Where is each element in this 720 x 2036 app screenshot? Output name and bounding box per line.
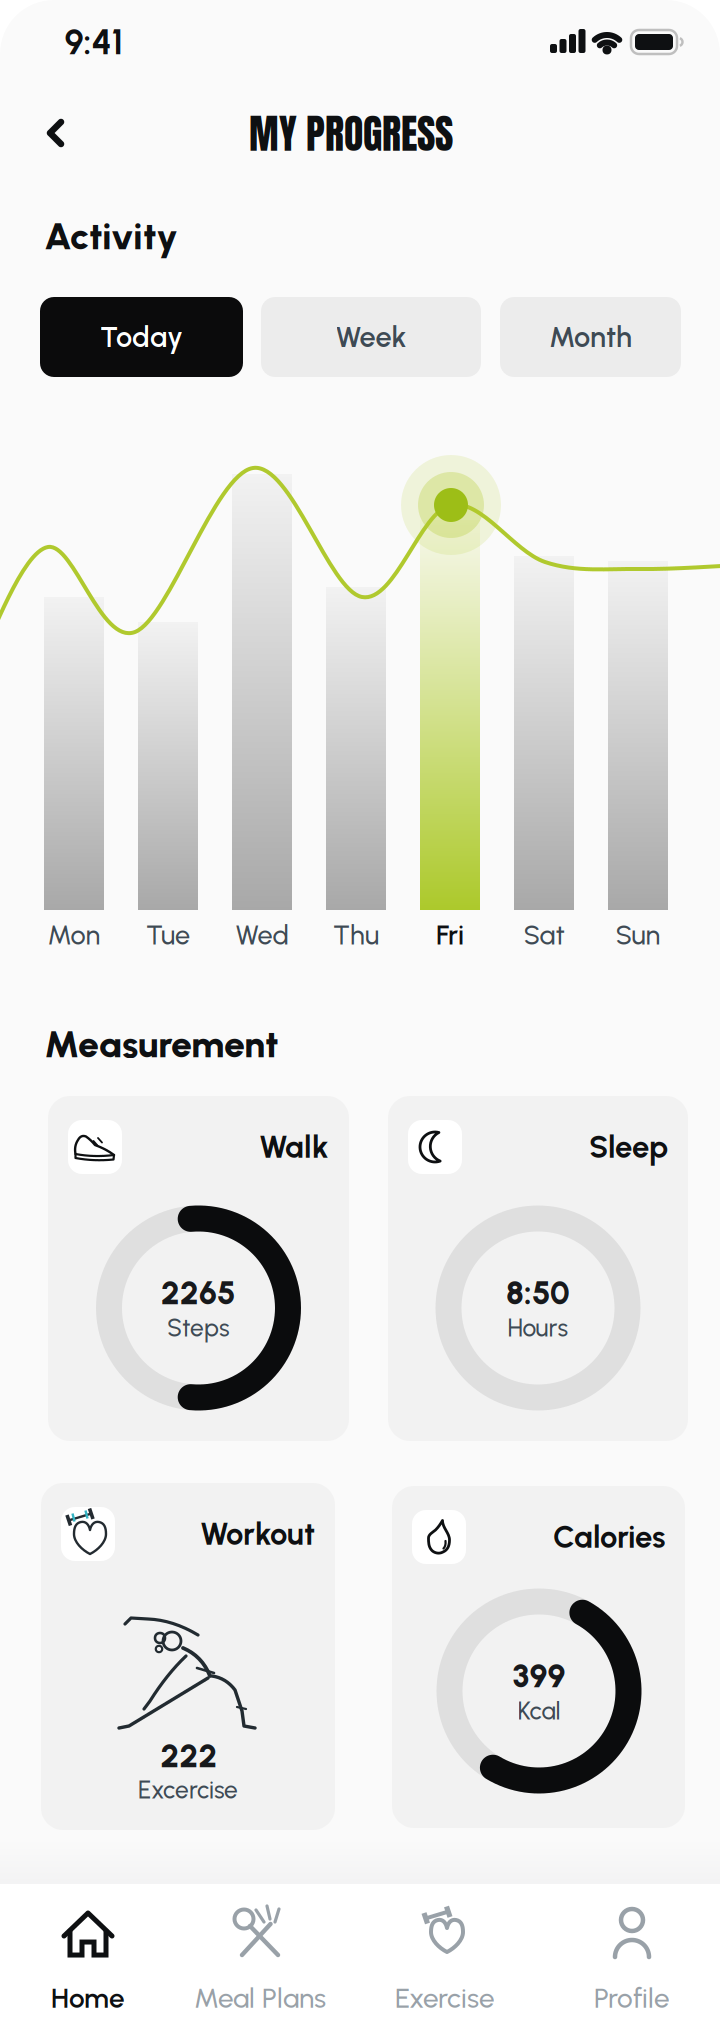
button[interactable]: Home bbox=[8, 1884, 168, 2012]
staticText: Wed bbox=[235, 919, 288, 951]
button[interactable]: Workout bbox=[41, 1483, 335, 1830]
button[interactable]: Back bbox=[34, 111, 78, 155]
button[interactable]: Profile bbox=[552, 1884, 712, 2012]
staticText: Sun bbox=[615, 919, 660, 951]
staticText: Sat bbox=[523, 919, 564, 951]
button[interactable]: Exercise bbox=[365, 1884, 525, 2012]
button[interactable]: Month bbox=[500, 297, 681, 377]
staticText: Home bbox=[51, 1981, 125, 2015]
button[interactable]: Walk bbox=[48, 1096, 349, 1441]
staticText: Week bbox=[335, 320, 406, 354]
staticText: Calories bbox=[553, 1518, 665, 1556]
staticText: Exercise bbox=[395, 1981, 495, 2015]
staticText: Walk bbox=[259, 1128, 329, 1166]
staticText: Measurement bbox=[44, 1021, 279, 1066]
staticText: 9:41 bbox=[64, 21, 123, 63]
staticText: Fri bbox=[436, 919, 464, 951]
staticText: Profile bbox=[594, 1981, 670, 2015]
staticText: Workout bbox=[200, 1515, 315, 1553]
staticText: MY PROGRESS bbox=[249, 104, 453, 164]
staticText: Steps bbox=[167, 1313, 230, 1343]
staticText: 399 bbox=[512, 1657, 565, 1695]
button[interactable]: Sleep bbox=[388, 1096, 688, 1441]
button[interactable]: Week bbox=[261, 297, 481, 377]
staticText: Thu bbox=[333, 919, 379, 951]
staticText: Meal Plans bbox=[194, 1981, 326, 2015]
staticText: Mon bbox=[47, 919, 100, 951]
button[interactable]: Meal Plans bbox=[180, 1884, 340, 2012]
staticText: Hours bbox=[507, 1313, 568, 1343]
staticText: Kcal bbox=[517, 1696, 560, 1726]
staticText: Sleep bbox=[589, 1128, 668, 1166]
staticText: Activity bbox=[44, 213, 178, 258]
button[interactable]: Calories bbox=[392, 1486, 685, 1828]
button[interactable]: Today bbox=[40, 297, 243, 377]
staticText: 222 bbox=[160, 1737, 217, 1775]
staticText: 2265 bbox=[161, 1274, 236, 1312]
staticText: Tue bbox=[146, 919, 190, 951]
staticText: Month bbox=[549, 320, 632, 354]
staticText: 8:50 bbox=[506, 1274, 570, 1312]
staticText: Today bbox=[100, 320, 183, 354]
staticText: Excercise bbox=[138, 1775, 238, 1805]
